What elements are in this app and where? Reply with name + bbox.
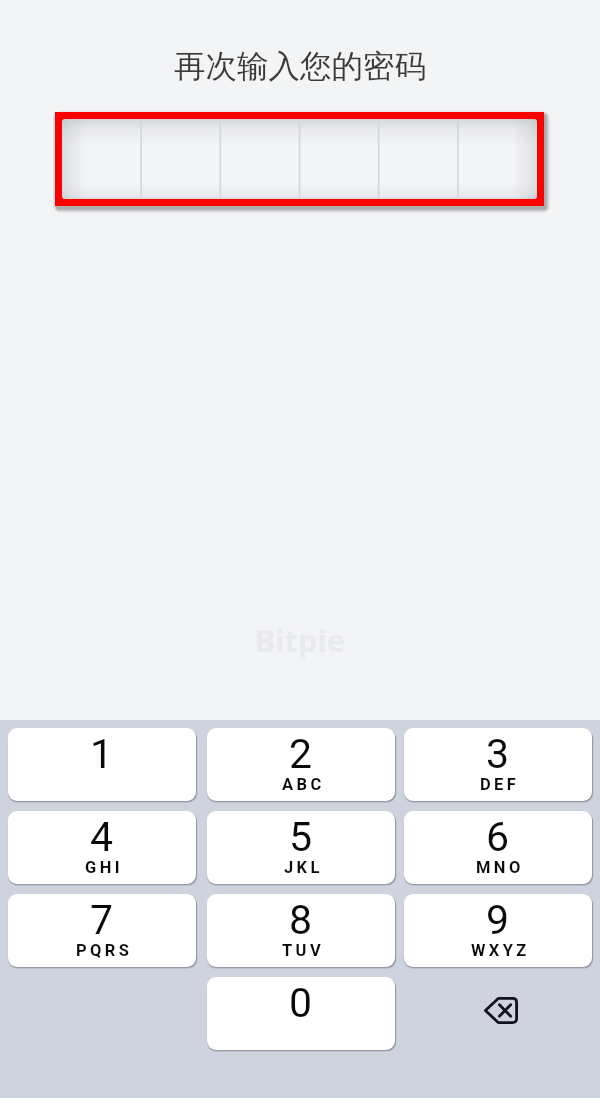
staticText: 7 bbox=[90, 896, 114, 944]
button[interactable]: 5 bbox=[207, 811, 395, 884]
staticText: 6 bbox=[486, 813, 510, 861]
button[interactable]: 0 bbox=[207, 977, 395, 1050]
staticText: ABC bbox=[282, 775, 325, 794]
staticText: JKL bbox=[284, 858, 323, 877]
button[interactable]: 6 bbox=[404, 811, 592, 884]
button[interactable]: 2 bbox=[207, 728, 395, 801]
staticText: 3 bbox=[486, 730, 510, 778]
button[interactable]: 7 bbox=[8, 894, 196, 967]
button[interactable]: 1 bbox=[8, 728, 196, 801]
staticText: 9 bbox=[486, 896, 510, 944]
button[interactable]: 3 bbox=[404, 728, 592, 801]
staticText: WXYZ bbox=[471, 941, 530, 960]
staticText: DEF bbox=[480, 775, 520, 794]
staticText: 8 bbox=[289, 896, 313, 944]
staticText: TUV bbox=[282, 941, 325, 960]
staticText: 再次输入您的密码 bbox=[0, 47, 600, 87]
staticText: 1 bbox=[90, 730, 114, 778]
staticText: 5 bbox=[289, 813, 313, 861]
button[interactable]: 9 bbox=[404, 894, 592, 967]
staticText: MNO bbox=[476, 858, 524, 877]
button[interactable]: Password entry field bbox=[55, 112, 544, 206]
staticText: 2 bbox=[289, 730, 313, 778]
button[interactable]: Backspace bbox=[404, 977, 592, 1050]
button[interactable]: 8 bbox=[207, 894, 395, 967]
staticText: PQRS bbox=[76, 941, 133, 960]
button[interactable]: 4 bbox=[8, 811, 196, 884]
staticText: GHI bbox=[85, 858, 123, 877]
staticText: 4 bbox=[90, 813, 114, 861]
staticText: 0 bbox=[289, 979, 313, 1027]
